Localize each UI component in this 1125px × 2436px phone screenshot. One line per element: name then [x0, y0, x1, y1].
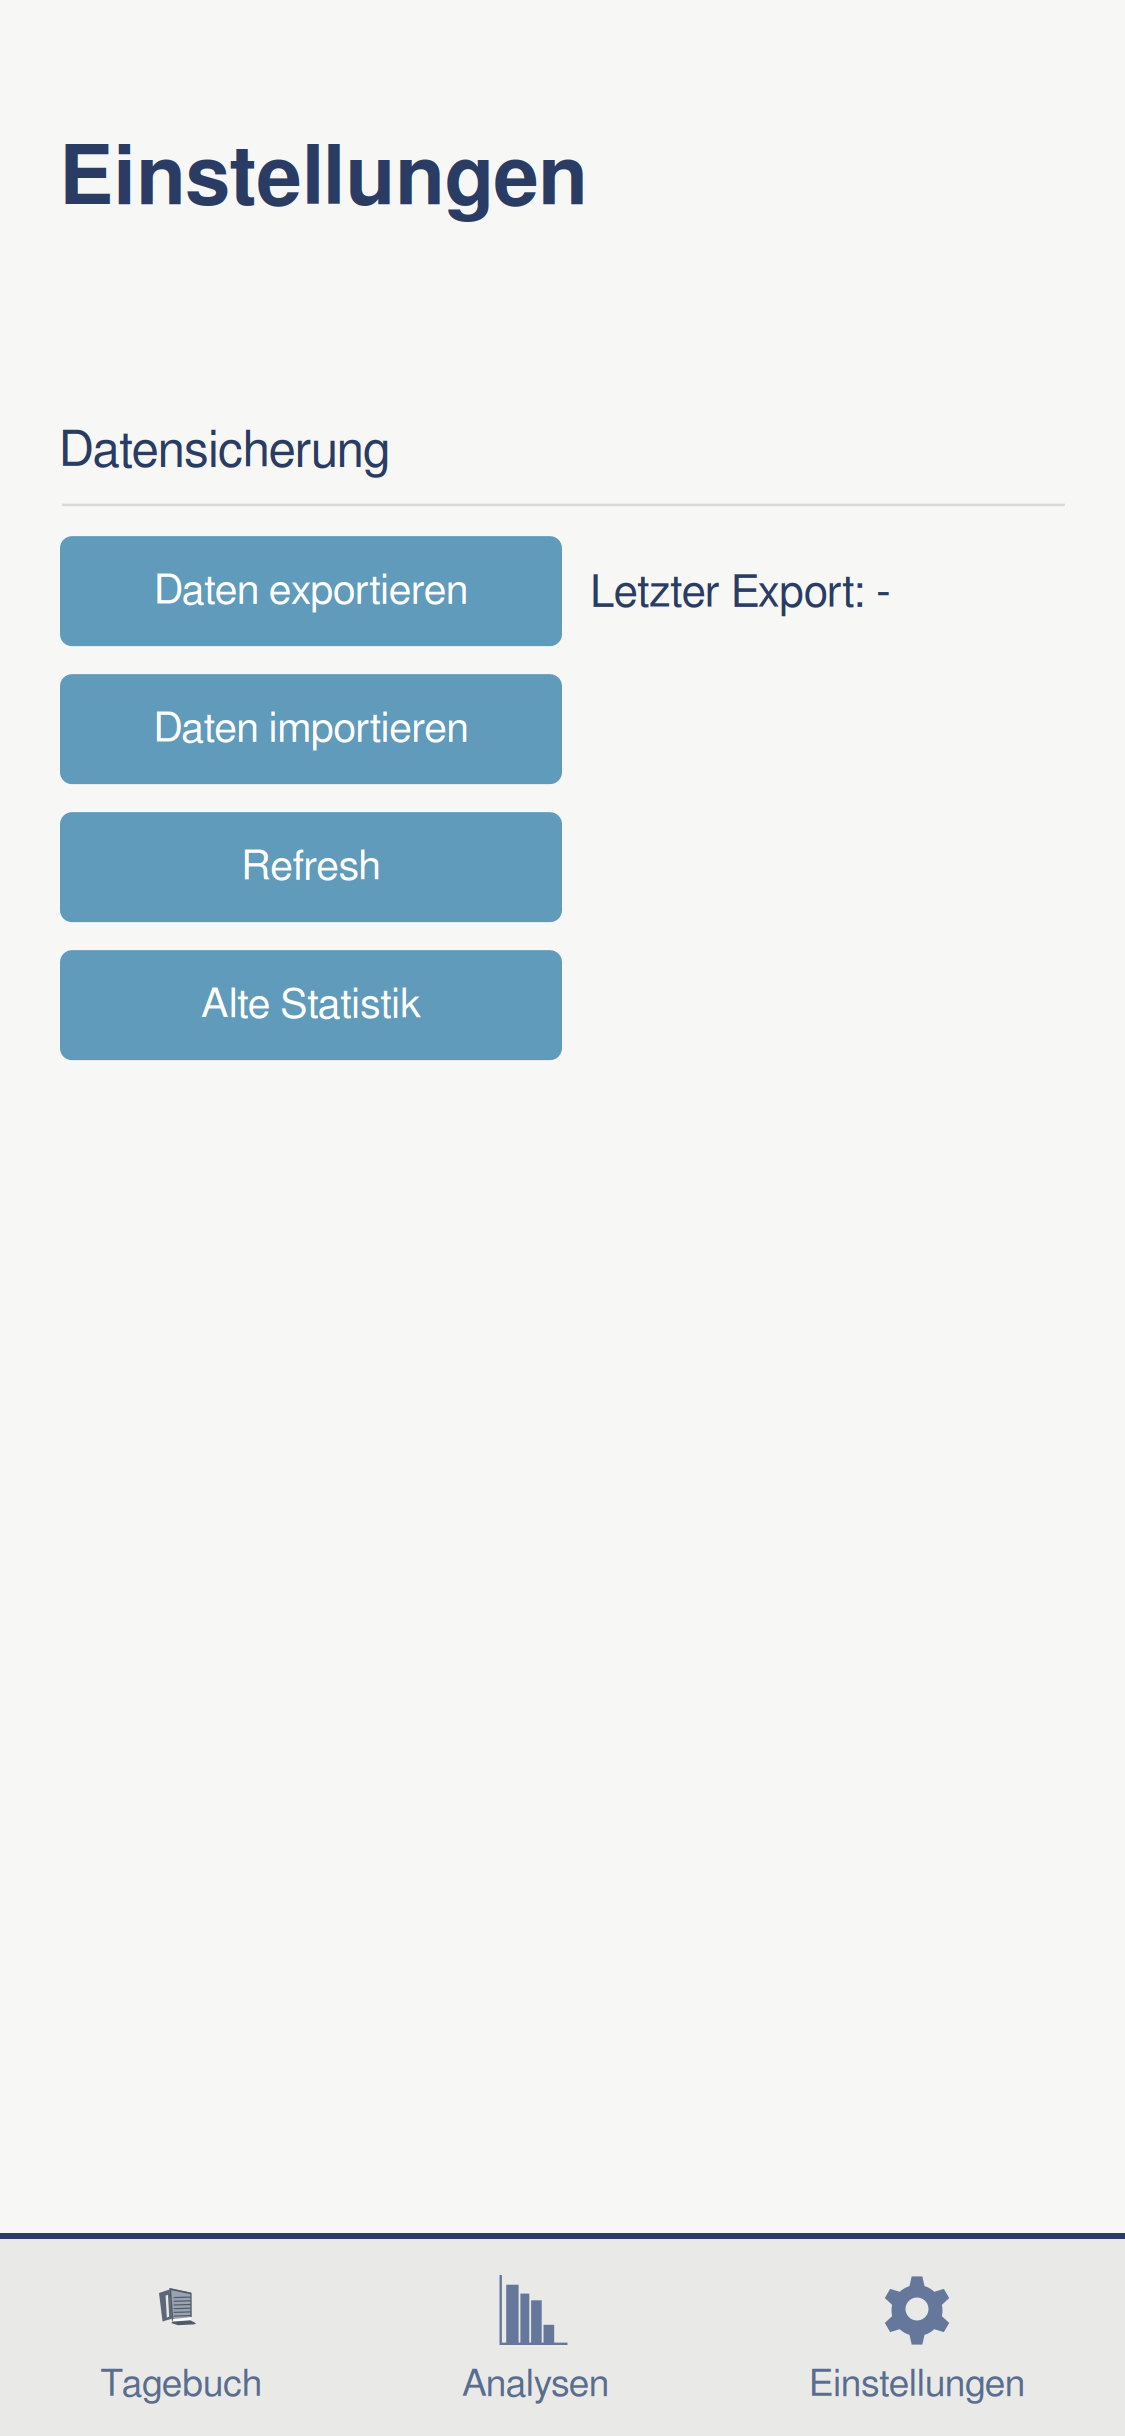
button[interactable]: Einstellungen: [809, 2275, 1025, 2403]
staticText: Einstellungen: [809, 2366, 1025, 2403]
staticText: Alte Statistik: [201, 984, 421, 1026]
button[interactable]: Refresh: [60, 812, 562, 922]
button[interactable]: Alte Statistik: [60, 950, 562, 1060]
staticText: Einstellungen: [59, 139, 588, 220]
staticText: Refresh: [241, 846, 380, 888]
button[interactable]: Daten exportieren: [60, 536, 562, 646]
staticText: Letzter Export: -: [590, 571, 891, 615]
staticText: Daten importieren: [153, 708, 468, 750]
staticText: Daten exportieren: [154, 570, 468, 612]
staticText: Tagebuch: [100, 2366, 262, 2403]
button[interactable]: Analysen: [462, 2275, 609, 2403]
staticText: Datensicherung: [59, 427, 390, 477]
staticText: Analysen: [462, 2366, 609, 2403]
button[interactable]: Daten importieren: [60, 674, 562, 784]
button[interactable]: Tagebuch: [100, 2275, 262, 2403]
